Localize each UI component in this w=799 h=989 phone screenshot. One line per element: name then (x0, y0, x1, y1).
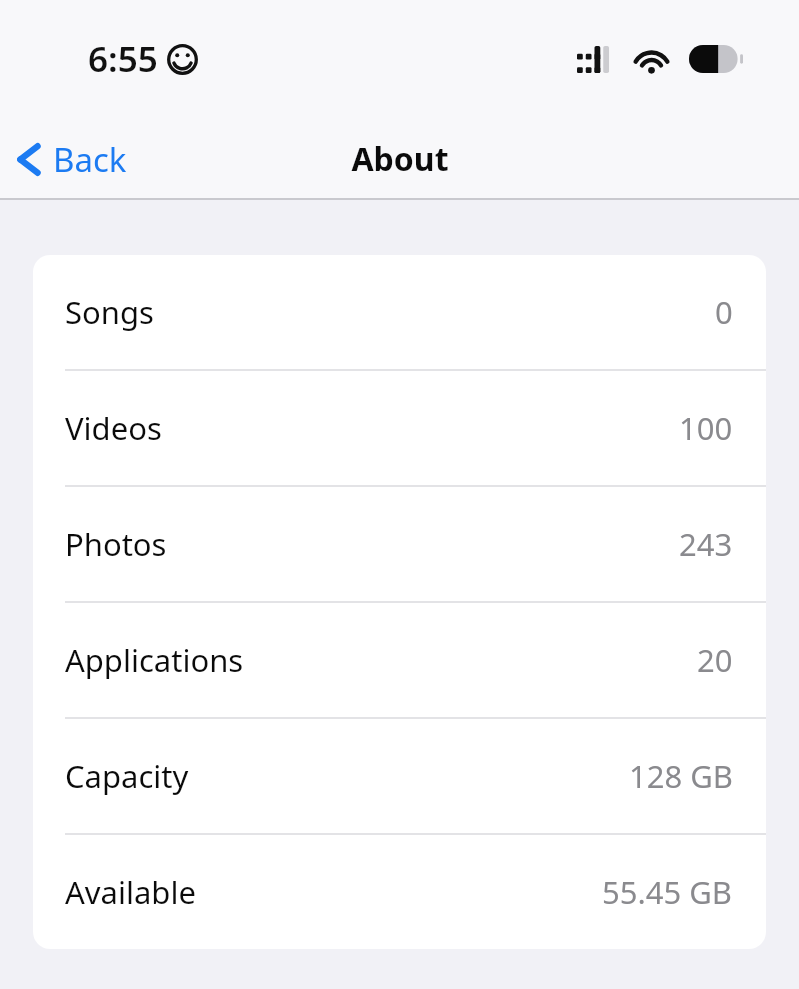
button[interactable]: Photos (33, 487, 766, 601)
button[interactable]: Capacity (33, 719, 766, 833)
staticText: 20 (697, 639, 733, 681)
staticText: Back (53, 137, 127, 182)
staticText: Photos (65, 523, 167, 565)
staticText: Available (65, 871, 196, 913)
staticText: 128 GB (629, 755, 733, 797)
staticText: 243 (679, 523, 733, 565)
other: Cellular signal (577, 46, 612, 73)
staticText: 6:55 (88, 35, 158, 83)
staticText: Songs (65, 291, 154, 333)
staticText: About (351, 137, 449, 181)
staticText: Capacity (65, 755, 189, 797)
staticText: Videos (65, 407, 162, 449)
button[interactable]: Back (0, 129, 141, 190)
staticText: 0 (715, 291, 733, 333)
button[interactable]: Songs (33, 255, 766, 369)
other: Wi-Fi (633, 46, 670, 73)
button[interactable]: Available (33, 835, 766, 949)
staticText: 100 (679, 407, 733, 449)
button[interactable]: Applications (33, 603, 766, 717)
button[interactable]: Videos (33, 371, 766, 485)
staticText: 55.45 GB (602, 871, 733, 913)
other: Focus status (167, 44, 198, 75)
other: Battery 60 percent (689, 45, 743, 73)
staticText: Applications (65, 639, 244, 681)
